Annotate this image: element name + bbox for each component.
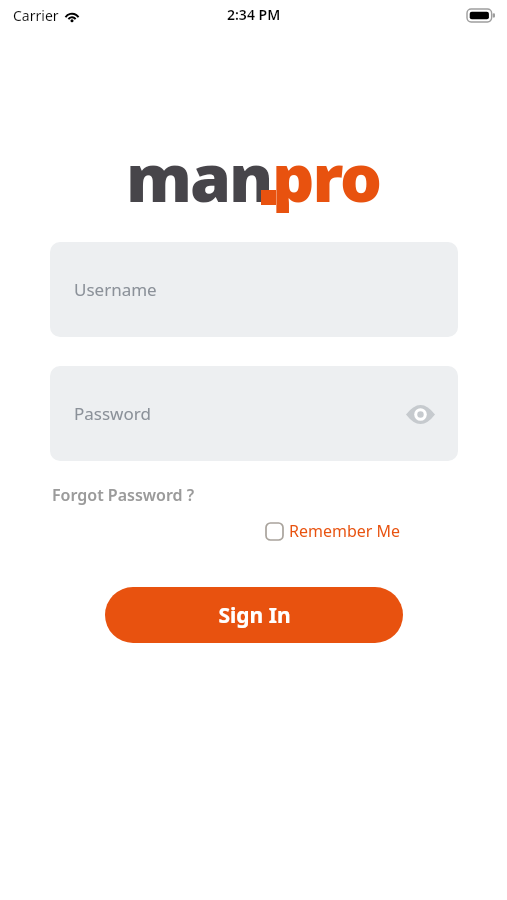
staticText: man bbox=[126, 131, 272, 213]
staticText: 2:34 PM bbox=[227, 5, 281, 24]
button[interactable]: Forgot Password ? bbox=[44, 480, 203, 510]
staticText: Carrier bbox=[13, 6, 59, 25]
staticText: pro bbox=[272, 131, 381, 213]
staticText: Sign In bbox=[218, 601, 291, 630]
button[interactable]: Remember Me bbox=[261, 515, 406, 547]
staticText: Username bbox=[74, 278, 157, 301]
button[interactable]: Password bbox=[50, 366, 458, 461]
staticText: Forgot Password ? bbox=[52, 484, 195, 506]
staticText: Password bbox=[74, 402, 151, 425]
button[interactable]: Sign In bbox=[105, 587, 403, 643]
button[interactable]: Username bbox=[50, 242, 458, 337]
button[interactable]: Show password bbox=[401, 395, 439, 433]
staticText: Remember Me bbox=[289, 520, 401, 542]
